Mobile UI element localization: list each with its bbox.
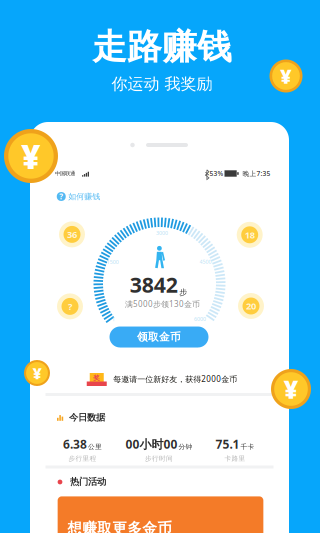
staticText: 中国联通: [55, 170, 75, 177]
staticText: 3000: [156, 229, 168, 237]
staticText: 晚上7:35: [242, 169, 270, 178]
staticText: ¥: [283, 372, 298, 406]
staticText: 6000: [194, 315, 206, 322]
button[interactable]: ?: [55, 189, 102, 204]
staticText: 36: [67, 228, 77, 241]
staticText: 4500: [199, 258, 211, 265]
staticText: 20: [246, 300, 256, 312]
staticText: 53%: [209, 169, 223, 178]
staticText: 18: [245, 229, 255, 241]
staticText: 千卡: [241, 443, 255, 451]
staticText: 公里: [88, 443, 102, 451]
staticText: 热门活动: [70, 476, 106, 487]
staticText: 步行里程: [68, 454, 96, 463]
staticText: 1: [112, 316, 115, 323]
staticText: ?: [68, 300, 72, 313]
staticText: 分钟: [179, 443, 193, 451]
staticText: 领取金币: [137, 330, 181, 343]
staticText: 00小时00: [125, 436, 177, 452]
staticText: 今日数据: [69, 412, 105, 423]
button[interactable]: 领取金币: [109, 326, 208, 347]
staticText: 走路赚钱: [92, 26, 232, 68]
staticText: 75.1: [215, 436, 239, 452]
staticText: 如何赚钱: [68, 192, 100, 201]
staticText: 卡路里: [224, 454, 245, 463]
staticText: 你运动 我奖励: [111, 74, 212, 94]
button[interactable]: 奖: [87, 371, 237, 387]
staticText: 1500: [107, 258, 119, 266]
staticText: 奖: [93, 374, 100, 382]
staticText: ¥: [21, 134, 41, 178]
staticText: ¥: [32, 362, 41, 384]
staticText: 步: [179, 287, 187, 297]
staticText: ¥: [280, 63, 292, 89]
button[interactable]: 想赚取更多金币: [58, 496, 263, 533]
staticText: 想赚取更多金币: [67, 519, 172, 533]
staticText: 满5000步领130金币: [125, 299, 200, 309]
staticText: ?: [59, 191, 63, 202]
staticText: 3842: [130, 270, 178, 299]
staticText: 步行时间: [145, 454, 173, 463]
staticText: 每邀请一位新好友，获得2000金币: [113, 374, 237, 384]
staticText: 6.38: [63, 436, 87, 452]
